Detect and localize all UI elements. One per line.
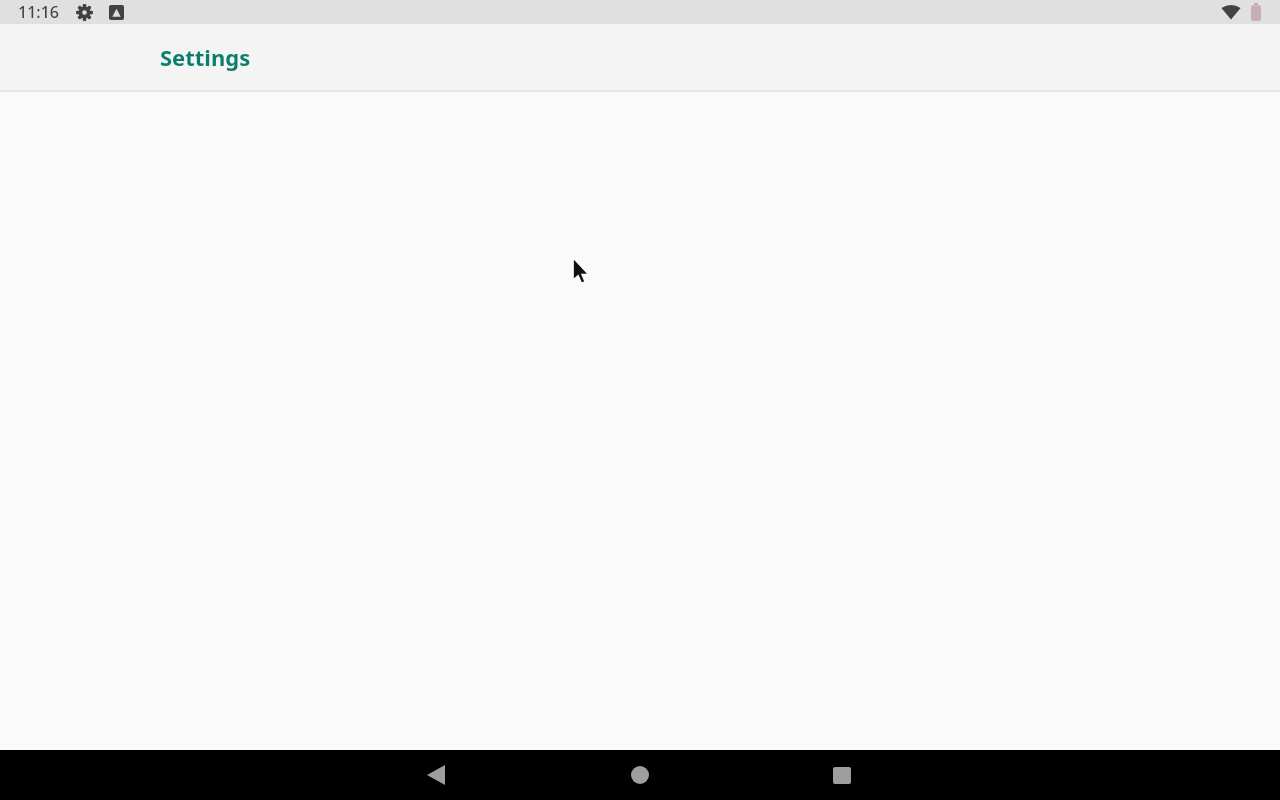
staticText: 11:16: [18, 1, 59, 23]
button[interactable]: Settings: [160, 42, 251, 72]
button[interactable]: [418, 757, 454, 793]
button[interactable]: [824, 757, 860, 793]
button[interactable]: [622, 757, 658, 793]
